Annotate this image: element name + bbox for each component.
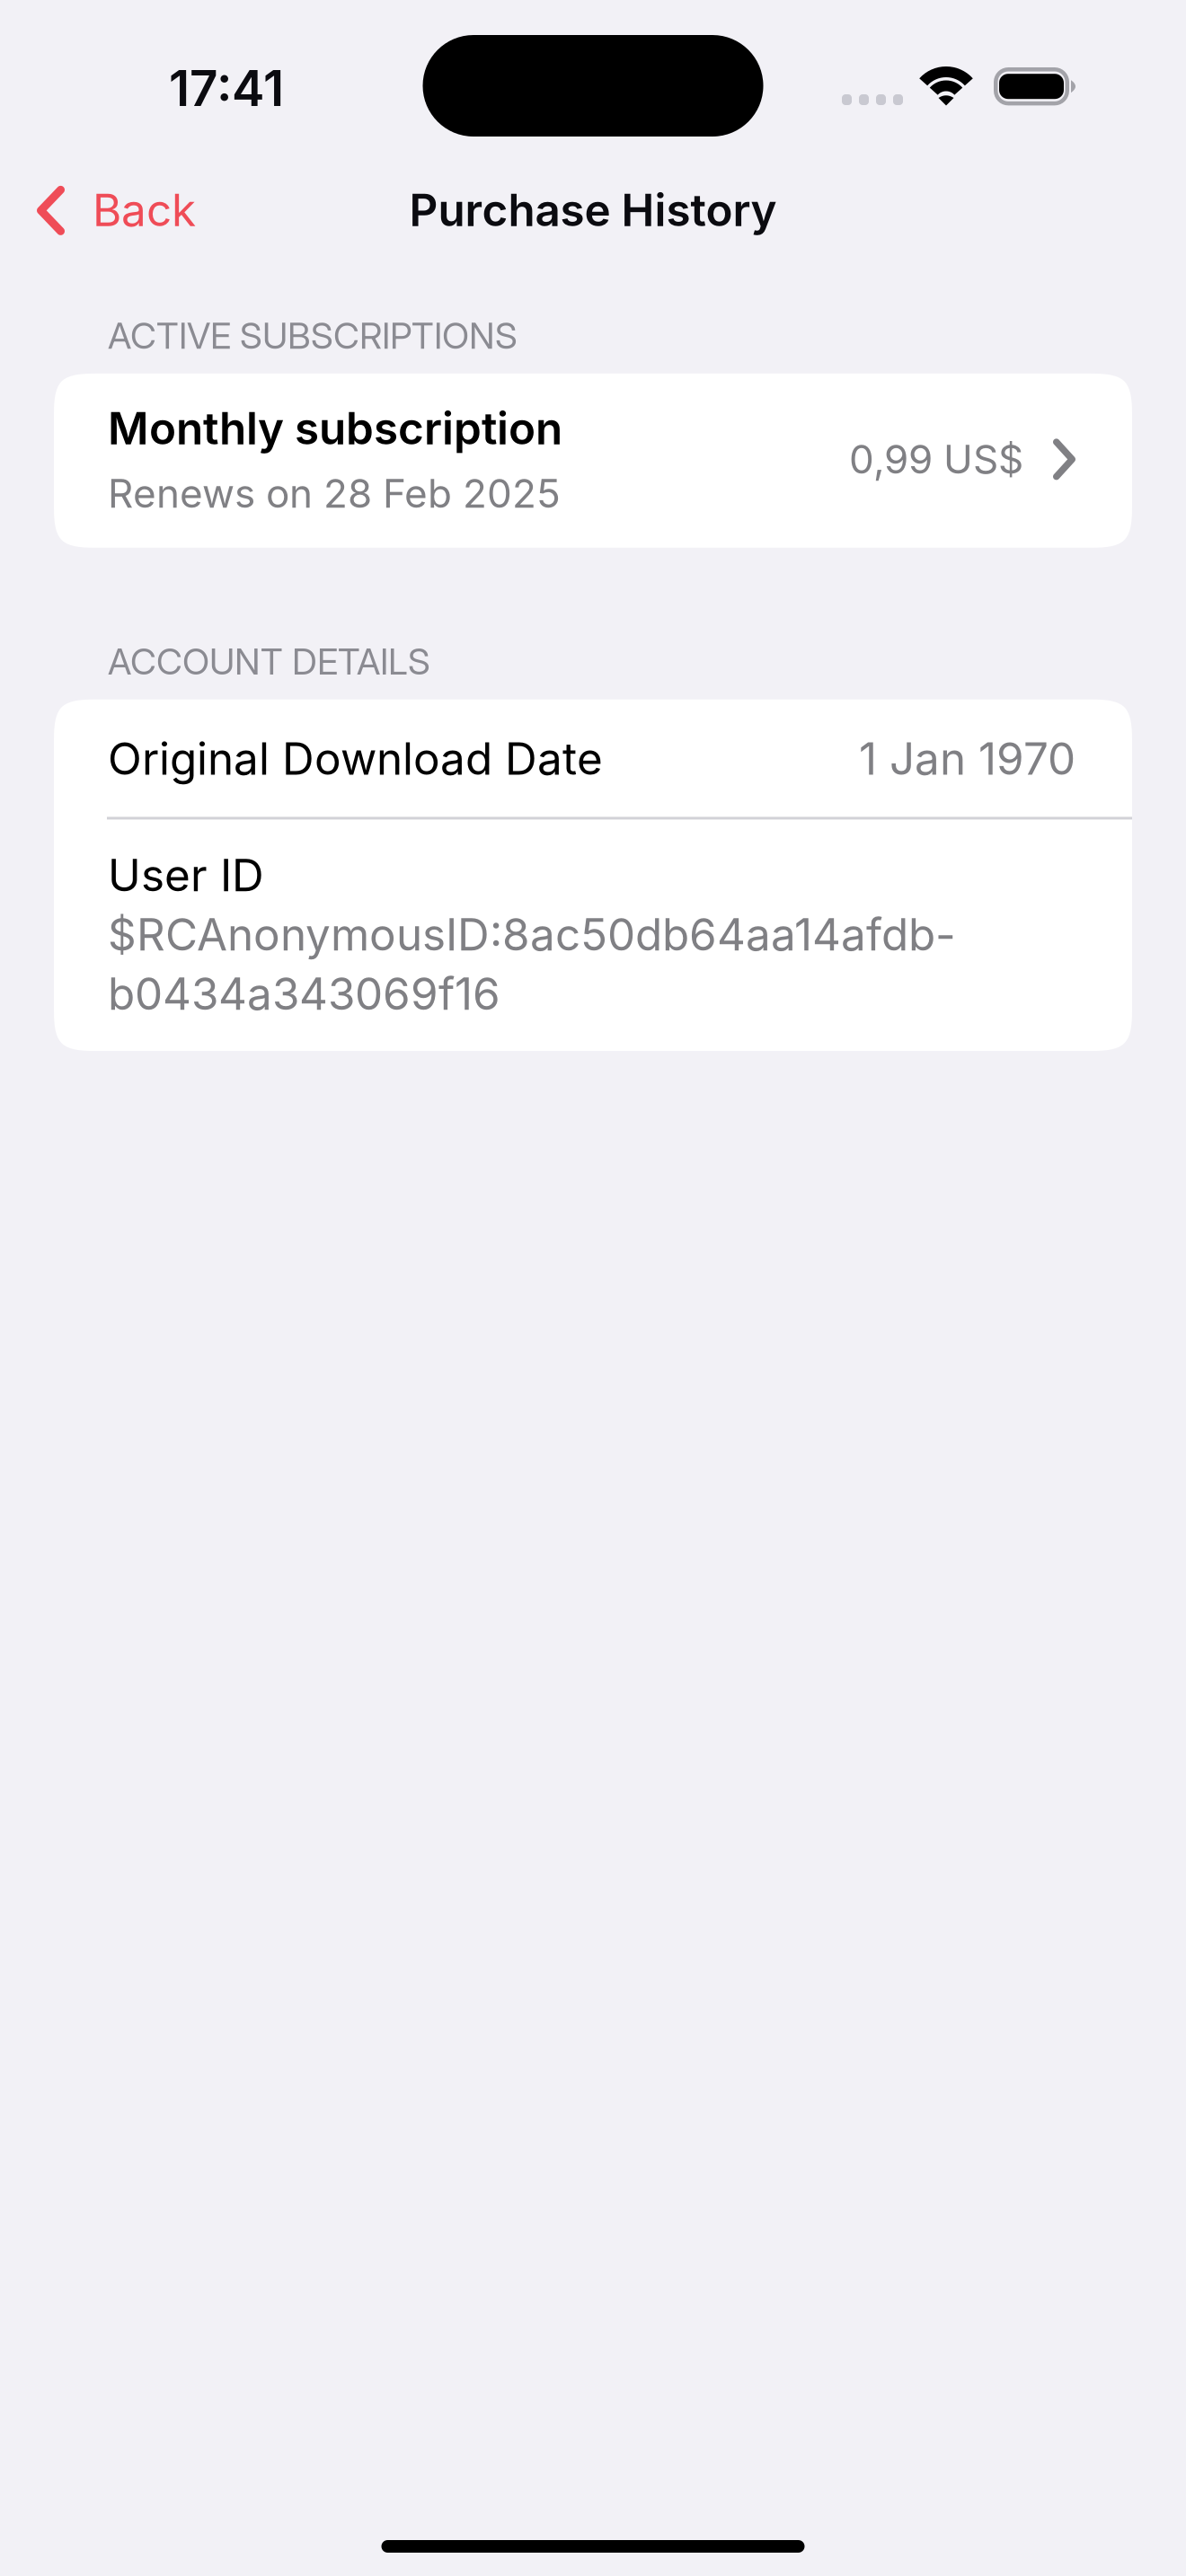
staticText: 1 Jan 1970 [859, 732, 1075, 785]
staticText: Back [93, 183, 196, 237]
button[interactable]: Monthly subscription [54, 374, 1132, 548]
staticText: Monthly subscription [108, 401, 562, 455]
staticText: Purchase History [409, 183, 777, 237]
staticText: ACCOUNT DETAILS [108, 640, 430, 683]
staticText: Original Download Date [108, 732, 603, 785]
staticText: User ID [108, 848, 264, 902]
staticText: ACTIVE SUBSCRIPTIONS [108, 314, 518, 357]
staticText: Renews on 28 Feb 2025 [108, 469, 561, 517]
button[interactable]: Back [0, 164, 232, 253]
staticText: 17:41 [169, 58, 284, 118]
staticText: 0,99 US$ [849, 435, 1023, 483]
staticText: $RCAnonymousID:8ac50db64aa14afdb-b0434a3… [108, 908, 956, 1020]
